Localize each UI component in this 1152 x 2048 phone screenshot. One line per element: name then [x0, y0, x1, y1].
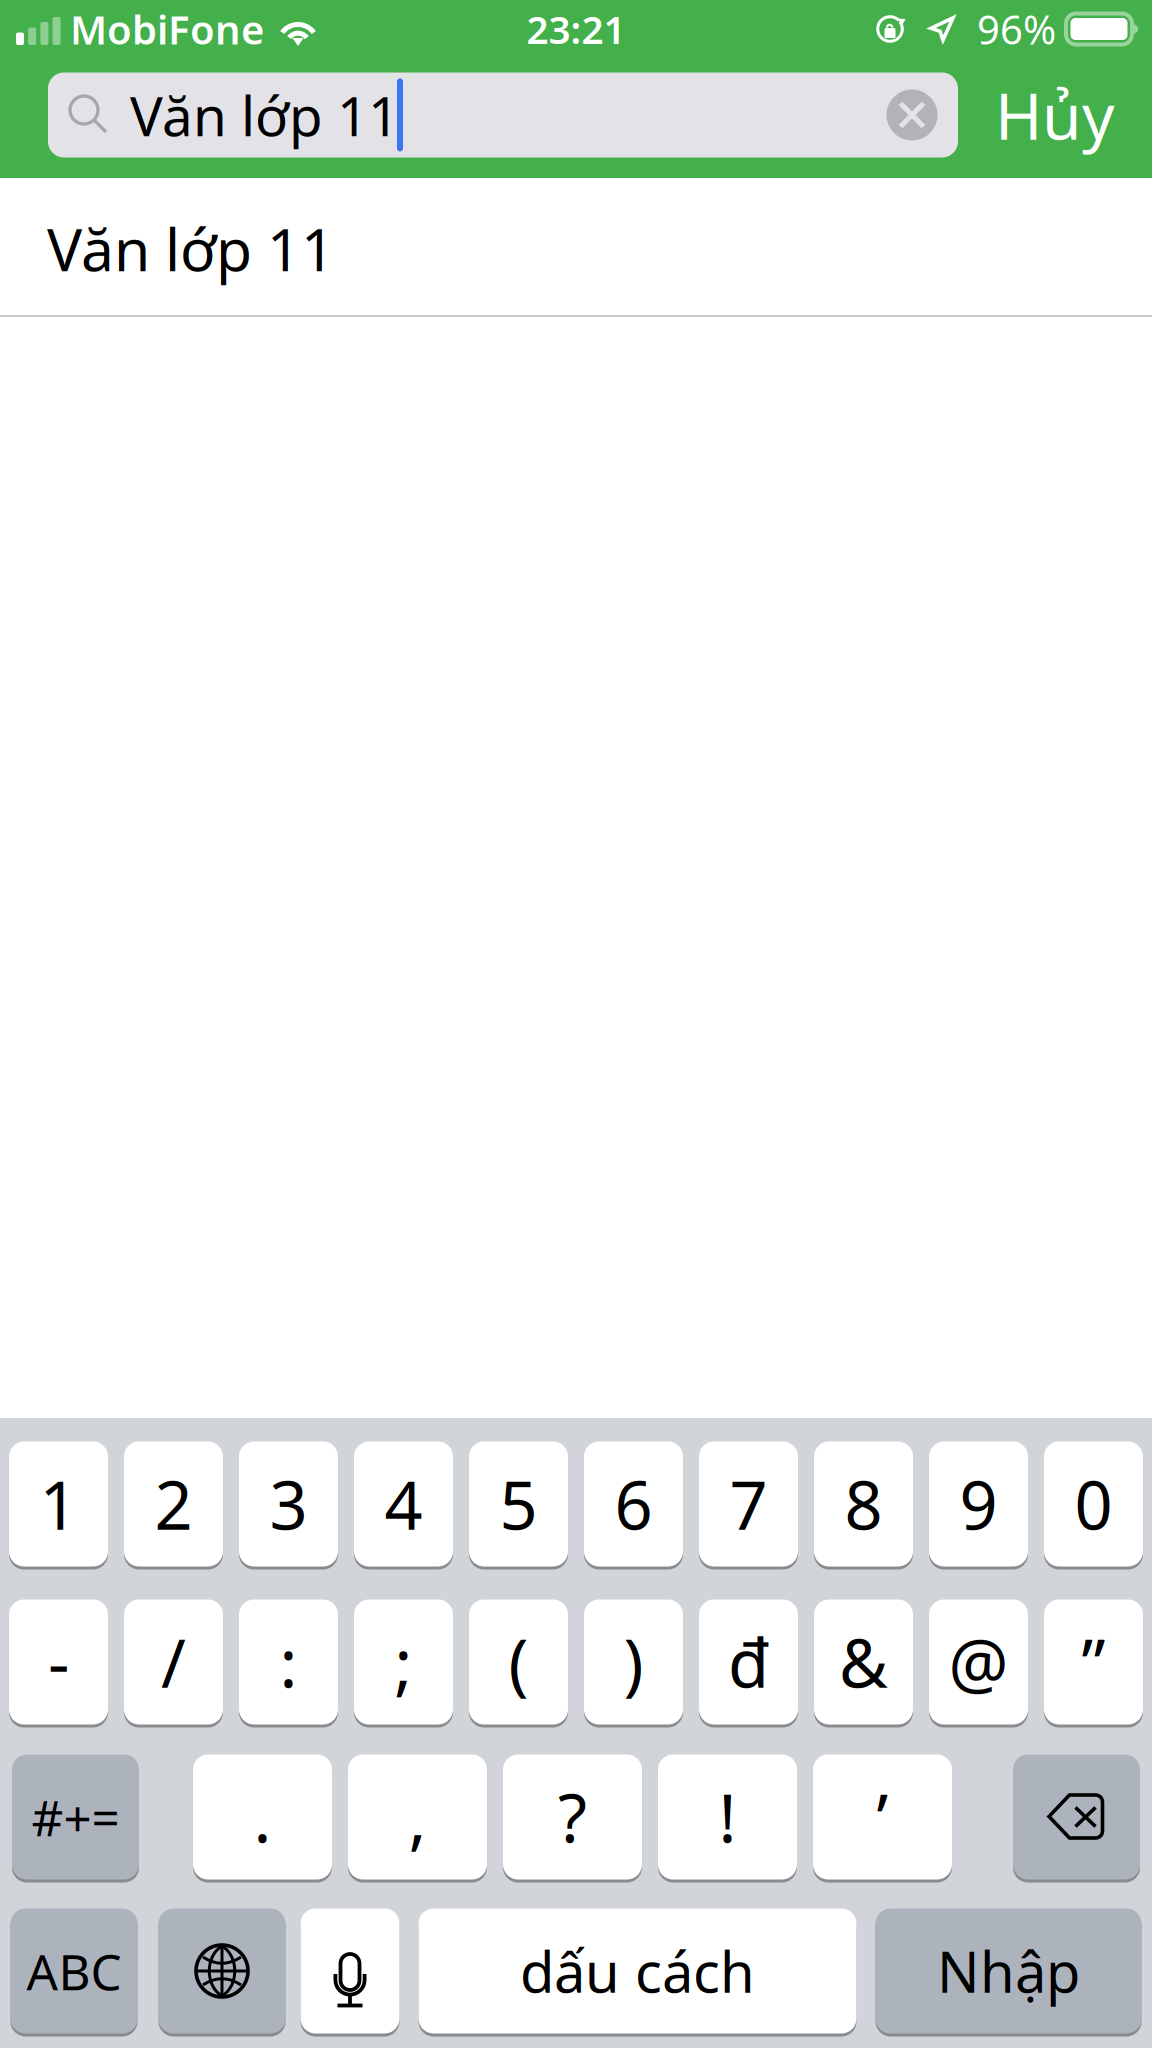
staticText: / — [161, 1618, 186, 1706]
button[interactable]: 3 — [239, 1440, 338, 1568]
button[interactable]: / — [124, 1598, 223, 1726]
button[interactable]: ? — [503, 1753, 642, 1881]
staticText: 0 — [1074, 1460, 1112, 1548]
staticText: ) — [623, 1618, 643, 1706]
button[interactable]: . — [193, 1753, 332, 1881]
staticText: @ — [948, 1618, 1008, 1706]
button[interactable]: ( — [469, 1598, 568, 1726]
staticText: dấu cách — [520, 1934, 755, 2008]
button[interactable]: 7 — [699, 1440, 798, 1568]
button[interactable]: 6 — [584, 1440, 683, 1568]
button[interactable]: ! — [658, 1753, 797, 1881]
staticText: ” — [1081, 1618, 1105, 1706]
staticText: ; — [394, 1618, 412, 1706]
staticText: 23:21 — [526, 3, 625, 55]
staticText: , — [408, 1773, 426, 1861]
button[interactable]: Nhập — [875, 1907, 1141, 2035]
button[interactable]: Văn lớp 11 — [48, 72, 958, 157]
button[interactable]: Delete — [1013, 1753, 1140, 1881]
staticText: ! — [718, 1773, 736, 1861]
staticText: 1 — [39, 1460, 77, 1548]
staticText: - — [48, 1618, 69, 1706]
button[interactable]: Dictation — [300, 1907, 399, 2035]
button[interactable]: Next keyboard — [158, 1907, 285, 2035]
button[interactable]: , — [348, 1753, 487, 1881]
button[interactable]: 9 — [929, 1440, 1028, 1568]
staticText: ( — [508, 1618, 528, 1706]
staticText: 3 — [269, 1460, 307, 1548]
staticText: : — [279, 1618, 297, 1706]
button[interactable]: - — [9, 1598, 108, 1726]
staticText: 5 — [499, 1460, 537, 1548]
staticText: 2 — [154, 1460, 192, 1548]
button[interactable]: Hủy — [958, 73, 1152, 156]
staticText: Nhập — [937, 1934, 1080, 2008]
staticText: ’ — [876, 1773, 888, 1861]
staticText: Văn lớp 11 — [47, 209, 335, 287]
button[interactable]: Clear text — [876, 73, 948, 156]
button[interactable]: ; — [354, 1598, 453, 1726]
staticText: 96% — [977, 2, 1056, 55]
staticText: ABC — [26, 1938, 121, 2004]
button[interactable]: 2 — [124, 1440, 223, 1568]
staticText: 9 — [959, 1460, 997, 1548]
staticText: . — [253, 1773, 271, 1861]
staticText: MobiFone — [70, 2, 264, 55]
button[interactable]: đ — [699, 1598, 798, 1726]
button[interactable]: ) — [584, 1598, 683, 1726]
staticText: & — [839, 1618, 888, 1706]
button[interactable]: 1 — [9, 1440, 108, 1568]
staticText: 6 — [614, 1460, 652, 1548]
staticText: #+= — [31, 1784, 119, 1850]
staticText: Văn lớp 11 — [130, 79, 399, 151]
staticText: 8 — [844, 1460, 882, 1548]
staticText: 4 — [384, 1460, 422, 1548]
button[interactable]: 8 — [814, 1440, 913, 1568]
button[interactable]: ABC — [10, 1907, 137, 2035]
button[interactable]: #+= — [12, 1753, 139, 1881]
staticText: Hủy — [995, 72, 1115, 157]
button[interactable]: Văn lớp 11 — [0, 178, 1152, 315]
button[interactable]: @ — [929, 1598, 1028, 1726]
button[interactable]: ’ — [813, 1753, 952, 1881]
staticText: đ — [728, 1618, 769, 1706]
button[interactable]: & — [814, 1598, 913, 1726]
button[interactable]: dấu cách — [418, 1907, 856, 2035]
button[interactable]: 4 — [354, 1440, 453, 1568]
button[interactable]: 5 — [469, 1440, 568, 1568]
button[interactable]: ” — [1044, 1598, 1143, 1726]
button[interactable]: 0 — [1044, 1440, 1143, 1568]
staticText: 7 — [729, 1460, 767, 1548]
button[interactable]: : — [239, 1598, 338, 1726]
staticText: ? — [558, 1773, 587, 1861]
